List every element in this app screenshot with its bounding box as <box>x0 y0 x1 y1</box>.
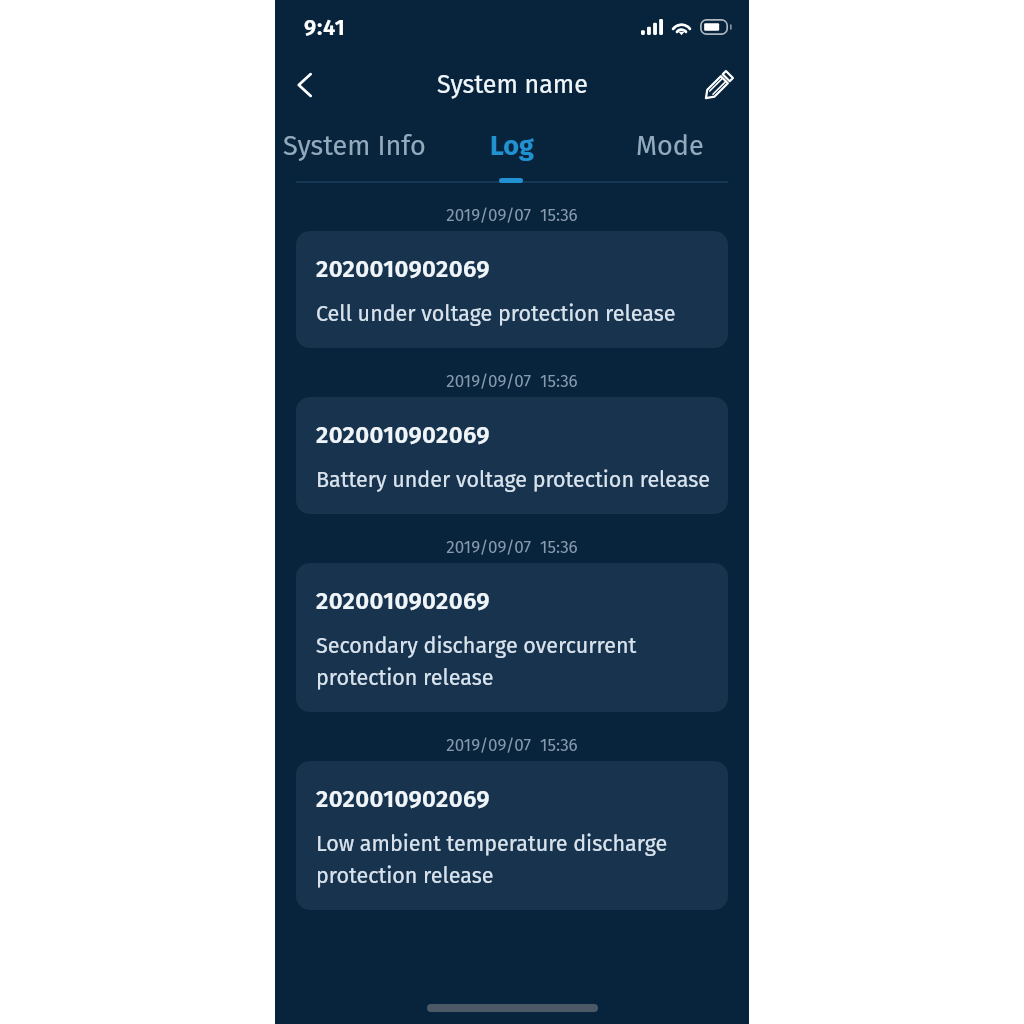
button[interactable]: Log <box>433 114 591 178</box>
staticText: 2019/09/07 15:36 <box>275 371 749 391</box>
staticText: System Info <box>283 130 426 162</box>
staticText: Mode <box>636 130 704 162</box>
staticText: 2019/09/07 15:36 <box>275 205 749 225</box>
staticText: 2020010902069 <box>316 421 490 450</box>
staticText: 2020010902069 <box>316 255 490 284</box>
button[interactable]: Back <box>281 61 329 109</box>
staticText: System name <box>437 70 588 100</box>
staticText: Secondary discharge overcurrent protecti… <box>316 633 637 691</box>
button[interactable]: Mode <box>591 114 749 178</box>
staticText: 2019/09/07 15:36 <box>275 537 749 557</box>
button[interactable]: 2020010902069 <box>296 563 728 712</box>
staticText: Low ambient temperature discharge protec… <box>316 831 668 889</box>
button[interactable]: Edit <box>694 61 742 109</box>
staticText: 2020010902069 <box>316 587 490 616</box>
staticText: Battery under voltage protection release <box>316 467 710 493</box>
button[interactable]: 2020010902069 <box>296 761 728 910</box>
staticText: Cell under voltage protection release <box>316 301 676 327</box>
staticText: 2019/09/07 15:36 <box>275 735 749 755</box>
button[interactable]: 2020010902069 <box>296 397 728 514</box>
staticText: 2020010902069 <box>316 785 490 814</box>
staticText: 9:41 <box>304 14 346 40</box>
button[interactable]: System Info <box>275 114 433 178</box>
button[interactable]: 2020010902069 <box>296 231 728 348</box>
staticText: Log <box>490 130 534 162</box>
